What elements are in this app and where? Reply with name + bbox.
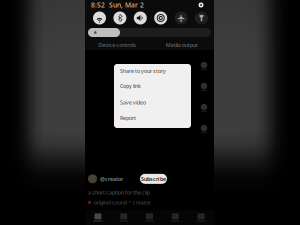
staticText: Report [120, 114, 136, 122]
button[interactable]: Media output [149, 40, 214, 50]
staticText: @creator [100, 175, 123, 182]
button[interactable]: Save video [114, 94, 191, 111]
staticText: original sound • creator [94, 199, 151, 206]
button[interactable]: Share [198, 102, 210, 114]
button[interactable]: Flashlight [193, 10, 209, 26]
staticText: 8:52 Sun, Mar 2 [91, 1, 144, 9]
staticText: Subscribe [141, 175, 166, 182]
button[interactable]: Copy link [114, 78, 191, 94]
staticText: Copy link [120, 82, 141, 90]
button[interactable]: Subscriptions [162, 210, 188, 225]
button[interactable]: @creator [97, 175, 123, 182]
staticText: a short caption for the clip [88, 189, 150, 196]
button[interactable]: Share to your story [114, 64, 191, 78]
button[interactable]: Wi-Fi [91, 10, 107, 26]
staticText: Device controls [98, 41, 136, 49]
button[interactable]: Sound [132, 10, 148, 26]
button[interactable]: Home [85, 210, 111, 225]
button[interactable]: Creator profile [88, 174, 97, 183]
button[interactable]: Shorts [111, 210, 137, 225]
button[interactable]: More [198, 123, 210, 135]
button[interactable]: Device controls [85, 40, 149, 50]
button[interactable]: Brightness [88, 28, 211, 37]
button[interactable]: Create [137, 210, 162, 225]
button[interactable]: Settings [196, 0, 206, 10]
button[interactable]: Airplane mode [173, 10, 189, 26]
button[interactable]: You [188, 210, 214, 225]
staticText: Media output [166, 41, 198, 49]
button[interactable]: Do Not Disturb [153, 10, 169, 26]
button[interactable]: Bluetooth [112, 10, 128, 26]
button[interactable]: Like [198, 60, 210, 72]
staticText: Save video [120, 99, 146, 106]
button[interactable]: Comment [198, 81, 210, 93]
staticText: Share to your story [120, 67, 166, 75]
button[interactable]: Subscribe [140, 174, 167, 184]
button[interactable]: Report [114, 111, 191, 125]
